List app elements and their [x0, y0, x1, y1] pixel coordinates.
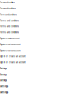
staticText: Settings: [0, 85, 8, 88]
staticText: Sign in or create an account: [0, 55, 26, 58]
staticText: Sign in or create an account: [0, 61, 26, 64]
staticText: Settings: [0, 67, 7, 69]
staticText: Sign in or create an account: [0, 49, 21, 52]
staticText: Sign in or create an account: [0, 43, 21, 45]
staticText: Terms and conditions: [0, 31, 19, 34]
staticText: Terms and conditions: [0, 7, 16, 9]
staticText: Settings: [0, 79, 7, 82]
staticText: Sign in or create an account: [0, 38, 19, 39]
staticText: Terms and conditions: [0, 19, 19, 22]
staticText: Terms and conditions: [0, 25, 19, 28]
staticText: Terms and conditions: [0, 13, 17, 16]
staticText: Settings: [0, 91, 8, 94]
staticText: Settings: [0, 73, 7, 76]
staticText: Terms and conditions: [0, 2, 15, 3]
